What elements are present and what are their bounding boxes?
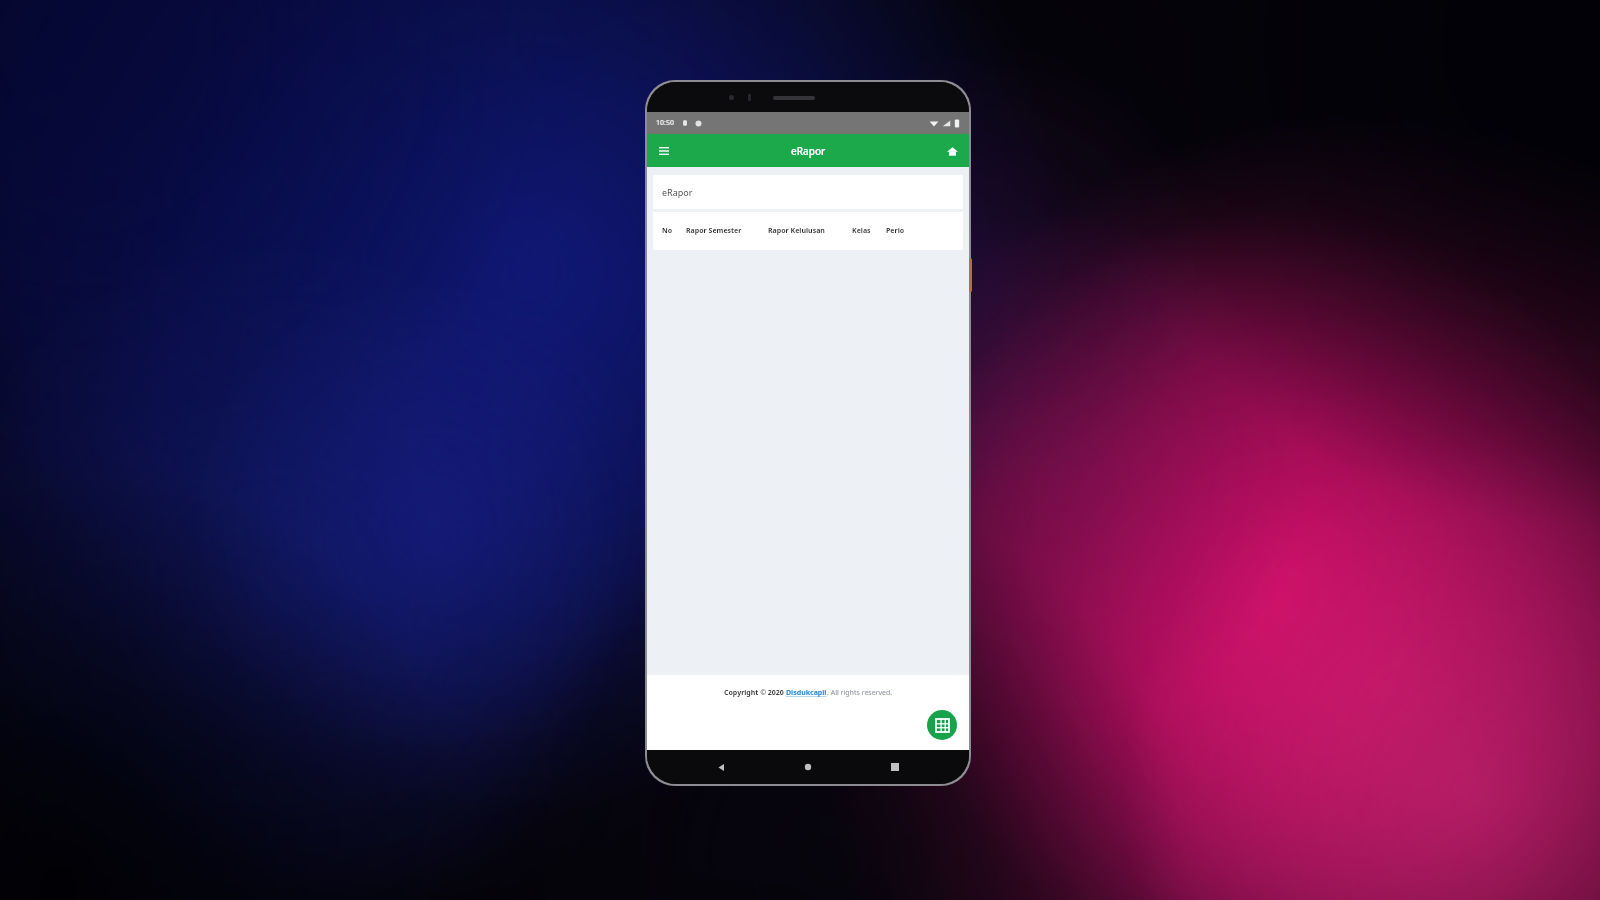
button[interactable]: Home [941, 140, 963, 162]
button[interactable]: Disdukcapil [786, 688, 827, 698]
staticText: 10:50 [656, 118, 674, 128]
staticText: Disdukcapil [786, 688, 827, 698]
staticText: eRapor [791, 144, 826, 158]
staticText: Kelas [852, 226, 871, 236]
staticText: No [662, 226, 673, 236]
staticText: Rapor Kelulusan [768, 226, 825, 236]
staticText: . All rights reserved. [827, 688, 893, 698]
button[interactable]: Show data table [927, 710, 957, 740]
staticText: eRapor [662, 186, 693, 198]
button[interactable]: Recent apps [882, 754, 908, 780]
button[interactable]: Back [708, 754, 734, 780]
staticText: Perio [886, 226, 905, 236]
staticText: Copyright © 2020 [724, 688, 786, 698]
staticText: Rapor Semester [686, 226, 742, 236]
button[interactable]: Home [795, 754, 821, 780]
button[interactable]: Open navigation menu [653, 140, 675, 162]
